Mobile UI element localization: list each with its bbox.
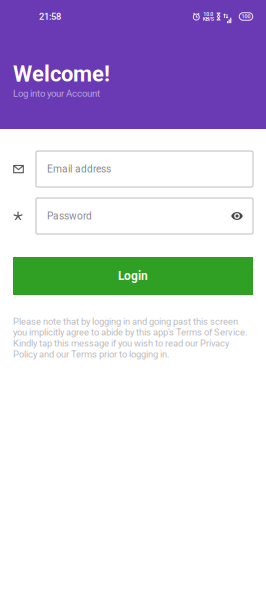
staticText: KB/S — [203, 16, 214, 22]
staticText: 21:58 — [39, 11, 61, 22]
button[interactable]: Show password — [229, 208, 245, 224]
staticText: 10.0 — [203, 11, 213, 17]
staticText: 100 — [241, 13, 250, 20]
staticText: Password — [47, 210, 92, 222]
staticText: Please note that by logging in and going… — [13, 316, 247, 360]
staticText: Log into your Account — [13, 88, 100, 99]
staticText: Welcome! — [13, 61, 110, 87]
staticText: Email address — [47, 163, 111, 175]
button[interactable]: Login — [13, 257, 253, 295]
staticText: Login — [118, 269, 148, 283]
